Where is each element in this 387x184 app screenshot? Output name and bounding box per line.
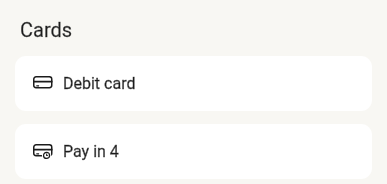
other: Debit card <box>33 76 53 91</box>
staticText: Debit card <box>63 74 136 93</box>
staticText: Cards <box>20 18 73 41</box>
button[interactable]: Debit card <box>15 56 372 111</box>
button[interactable]: Pay in 4 <box>15 124 372 179</box>
staticText: Cards <box>20 18 73 41</box>
other: Pay in 4 <box>33 144 53 159</box>
staticText: Debit card <box>63 74 136 93</box>
staticText: Pay in 4 <box>63 142 119 161</box>
staticText: Pay in 4 <box>63 142 119 161</box>
